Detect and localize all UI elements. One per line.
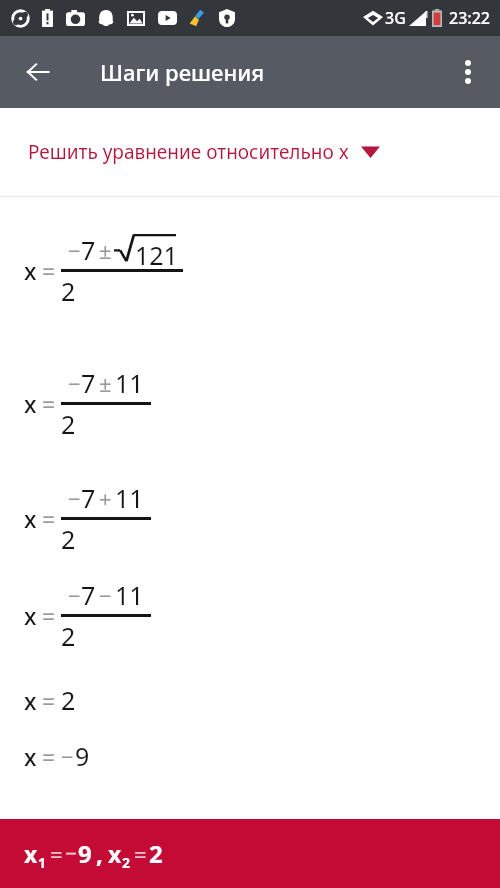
staticText: 1 <box>38 853 47 872</box>
staticText: 2 <box>61 522 151 556</box>
staticText: 2 <box>61 683 76 717</box>
staticText: = <box>42 741 56 772</box>
staticText: x <box>24 600 37 631</box>
button[interactable]: Back <box>12 46 64 98</box>
button[interactable]: More options <box>444 48 492 96</box>
staticText: x <box>24 741 37 772</box>
staticText: 3G <box>385 7 406 29</box>
staticText: − <box>68 235 81 265</box>
staticText: 7 <box>81 366 96 400</box>
staticText: 7 <box>81 481 96 515</box>
staticText: = <box>42 685 56 716</box>
staticText: − <box>68 483 81 513</box>
staticText: 9 <box>75 739 90 773</box>
staticText: 11 <box>115 578 144 612</box>
button[interactable]: x <box>0 819 500 888</box>
staticText: 11 <box>115 481 144 515</box>
staticText: + <box>99 483 112 513</box>
staticText: x <box>24 388 37 419</box>
staticText: 2 <box>61 619 151 653</box>
staticText: 7 <box>81 233 96 267</box>
staticText: = <box>42 600 56 631</box>
staticText: , <box>96 837 103 870</box>
staticText: − <box>99 580 112 610</box>
staticText: Шаги решения <box>100 57 265 87</box>
staticText: ± <box>99 368 112 398</box>
staticText: x <box>24 685 37 716</box>
staticText: Решить уравнение относительно x <box>28 139 349 165</box>
staticText: = <box>42 255 56 286</box>
staticText: x <box>24 838 38 869</box>
staticText: 2 <box>122 853 131 872</box>
staticText: − <box>68 580 81 610</box>
staticText: = <box>50 839 63 869</box>
staticText: 2 <box>61 407 151 441</box>
staticText: − <box>68 368 81 398</box>
staticText: 121 <box>135 238 178 272</box>
staticText: 7 <box>81 578 96 612</box>
staticText: ± <box>99 235 112 265</box>
staticText: = <box>42 503 56 534</box>
button[interactable]: Решить уравнение относительно x <box>0 108 500 196</box>
staticText: − <box>65 839 78 868</box>
staticText: x <box>108 838 122 869</box>
staticText: − <box>61 741 74 771</box>
staticText: 9 <box>78 837 92 870</box>
staticText: = <box>42 388 56 419</box>
staticText: 11 <box>115 366 144 400</box>
staticText: x <box>24 503 37 534</box>
staticText: 2 <box>61 274 183 308</box>
staticText: x <box>24 255 37 286</box>
staticText: 2 <box>149 837 163 870</box>
staticText: 1 <box>424 8 430 20</box>
staticText: 23:22 <box>449 7 490 29</box>
staticText: = <box>134 839 147 869</box>
